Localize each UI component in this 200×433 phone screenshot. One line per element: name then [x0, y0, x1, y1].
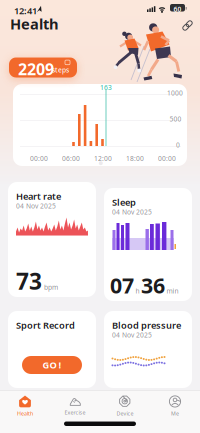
button[interactable]: Me	[150, 394, 200, 418]
staticText: Blood pressure	[112, 319, 181, 331]
staticText: GO !	[42, 359, 61, 371]
staticText: Exercise	[64, 409, 85, 416]
staticText: Sport Record	[16, 319, 75, 331]
staticText: 500	[169, 114, 181, 123]
staticText: 07	[110, 271, 134, 299]
button[interactable]: Heart rate	[8, 182, 96, 297]
staticText: Me	[171, 410, 179, 417]
button[interactable]: Health	[0, 394, 50, 418]
staticText: 04 Nov 2025	[112, 207, 152, 216]
button[interactable]: Blood pressure	[104, 311, 192, 388]
staticText: h	[135, 286, 139, 295]
button[interactable]: Exercise	[50, 394, 100, 418]
staticText: 60	[174, 5, 182, 14]
staticText: Device	[116, 410, 133, 417]
staticText: 04 Nov 2025	[112, 330, 152, 339]
staticText: Heart rate	[16, 190, 61, 202]
staticText: 00:00	[158, 154, 176, 163]
staticText: 12:00	[94, 154, 112, 163]
staticText: 12:41	[14, 4, 37, 17]
button[interactable]: GO !	[22, 356, 82, 374]
staticText: 2209	[18, 58, 54, 79]
staticText: min	[166, 286, 178, 295]
staticText: Sleep	[112, 196, 136, 208]
button[interactable]: Device	[100, 394, 150, 418]
button[interactable]: 2209	[9, 57, 77, 77]
staticText: Health	[10, 14, 59, 33]
staticText: 73	[16, 266, 42, 296]
staticText: 0	[176, 140, 180, 149]
staticText: steps	[52, 65, 69, 74]
staticText: 18:00	[126, 154, 144, 163]
staticText: 36	[141, 271, 165, 299]
staticText: bpm	[44, 283, 58, 292]
staticText: Health	[17, 410, 33, 417]
staticText: 163	[100, 83, 112, 92]
staticText: 00:00	[30, 154, 48, 163]
staticText: 04 Nov 2025	[16, 201, 56, 210]
staticText: 06:00	[62, 154, 80, 163]
button[interactable]: Sleep	[104, 188, 192, 301]
staticText: 1000	[167, 88, 183, 97]
button[interactable]: Link device	[181, 19, 194, 32]
